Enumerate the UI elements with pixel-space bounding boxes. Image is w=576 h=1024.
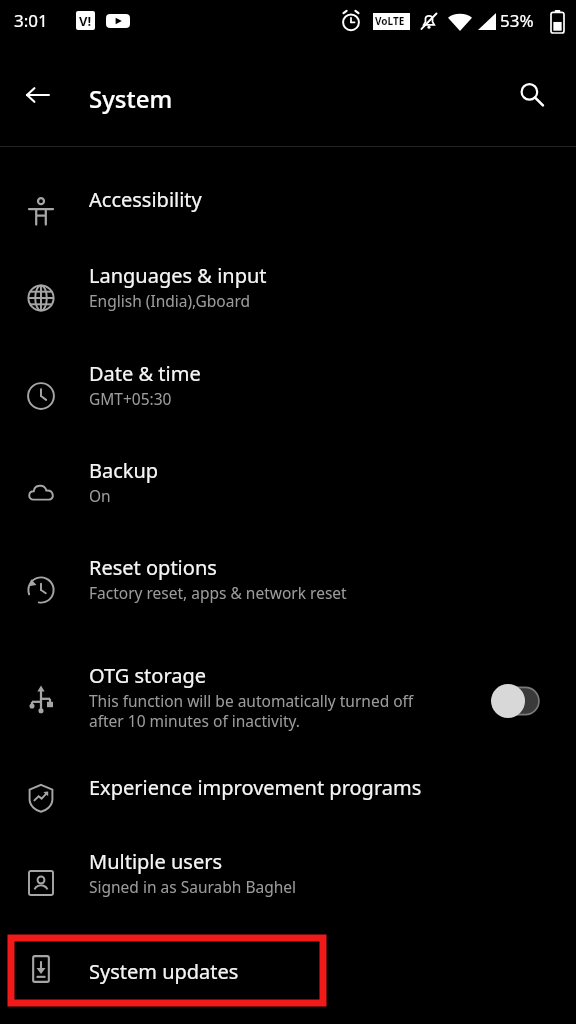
button[interactable]	[0, 258, 576, 338]
staticText: Reset options	[89, 554, 217, 581]
button[interactable]	[0, 453, 576, 533]
button[interactable]: Search	[508, 71, 556, 119]
staticText: Languages & input	[89, 262, 267, 289]
button[interactable]: OTG storage toggle	[478, 676, 554, 726]
button[interactable]	[11, 938, 323, 1003]
staticText: On	[89, 485, 489, 506]
button[interactable]	[0, 550, 576, 630]
staticText: Accessibility	[89, 186, 202, 213]
staticText: English (India),Gboard	[89, 290, 489, 311]
staticText: OTG storage	[89, 662, 207, 689]
staticText: Signed in as Saurabh Baghel	[89, 876, 489, 897]
button[interactable]	[0, 172, 576, 252]
staticText: V!	[79, 12, 92, 30]
staticText: Multiple users	[89, 848, 223, 875]
button[interactable]	[0, 843, 576, 923]
staticText: Experience improvement programs	[89, 774, 422, 801]
staticText: 3:01	[14, 9, 48, 32]
staticText: System updates	[89, 958, 239, 985]
staticText: VoLTE	[375, 14, 405, 28]
staticText: Date & time	[89, 360, 201, 387]
button[interactable]: Back	[14, 71, 62, 119]
button[interactable]	[0, 758, 576, 838]
button[interactable]	[0, 356, 576, 436]
staticText: Backup	[89, 457, 159, 484]
staticText: GMT+05:30	[89, 388, 489, 409]
button[interactable]	[0, 645, 576, 755]
staticText: This function will be automatically turn…	[89, 690, 449, 732]
staticText: 53%	[500, 9, 534, 32]
staticText: System	[89, 82, 173, 115]
staticText: Factory reset, apps & network reset	[89, 582, 489, 603]
